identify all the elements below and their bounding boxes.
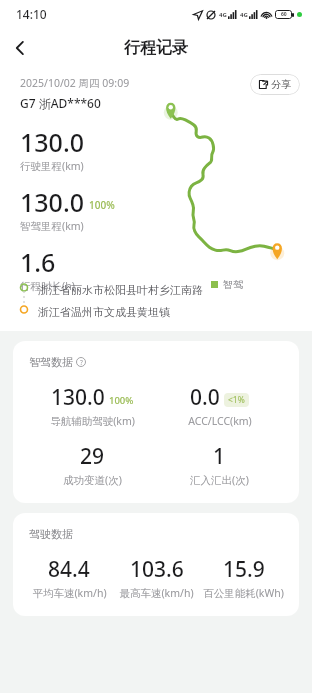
staticText: 2025/10/02 周四 09:09 (20, 76, 130, 90)
staticText: 驾驶数据 (29, 527, 73, 541)
staticText: 4G (219, 11, 227, 19)
staticText: 130.0 (20, 185, 85, 219)
button[interactable]: Back (0, 28, 40, 68)
staticText: 14:10 (16, 6, 47, 22)
staticText: 29 (80, 442, 105, 471)
staticText: 15.9 (223, 555, 265, 584)
button[interactable]: Info (76, 357, 86, 367)
staticText: 智驾数据 (29, 355, 73, 369)
staticText: 130.0 (20, 125, 85, 159)
staticText: 行驶里程(km) (20, 159, 84, 173)
staticText: 浙江省丽水市松阳县叶村乡江南路 (38, 283, 203, 297)
staticText: ? (80, 358, 83, 367)
staticText: 行程时长(h) (20, 279, 75, 293)
staticText: 成功变道(次) (63, 473, 122, 487)
staticText: 智驾 (223, 278, 243, 291)
staticText: 60 (281, 11, 287, 18)
staticText: 最高车速(km/h) (119, 586, 194, 600)
staticText: 100% (89, 198, 115, 212)
button[interactable]: 分享 (250, 74, 300, 95)
staticText: 1.6 (20, 245, 56, 279)
staticText: 100% (109, 394, 134, 407)
staticText: 0.0 (190, 383, 220, 412)
staticText: 汇入汇出(次) (190, 473, 249, 487)
staticText: G7 浙AD***60 (20, 95, 101, 111)
staticText: 4G (240, 11, 248, 19)
staticText: ACC/LCC(km) (188, 414, 252, 428)
staticText: 103.6 (130, 555, 184, 584)
staticText: 导航辅助驾驶(km) (50, 414, 135, 428)
staticText: <1% (228, 394, 245, 406)
staticText: 平均车速(km/h) (32, 586, 107, 600)
staticText: 智驾里程(km) (20, 219, 84, 233)
staticText: 130.0 (51, 383, 105, 412)
staticText: 84.4 (48, 555, 90, 584)
staticText: 1 (213, 442, 226, 471)
staticText: 百公里能耗(kWh) (203, 586, 284, 600)
staticText: 浙江省温州市文成县黄坦镇 (38, 305, 170, 319)
staticText: 分享 (271, 78, 291, 91)
staticText: 行程记录 (124, 38, 188, 58)
